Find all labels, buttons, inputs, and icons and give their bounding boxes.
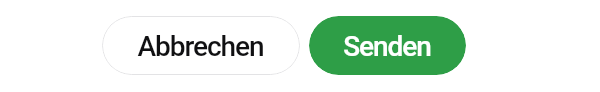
staticText: Abbrechen xyxy=(137,30,264,63)
button[interactable]: Senden xyxy=(309,16,466,75)
staticText: Senden xyxy=(343,30,431,63)
button[interactable]: Abbrechen xyxy=(102,16,300,75)
